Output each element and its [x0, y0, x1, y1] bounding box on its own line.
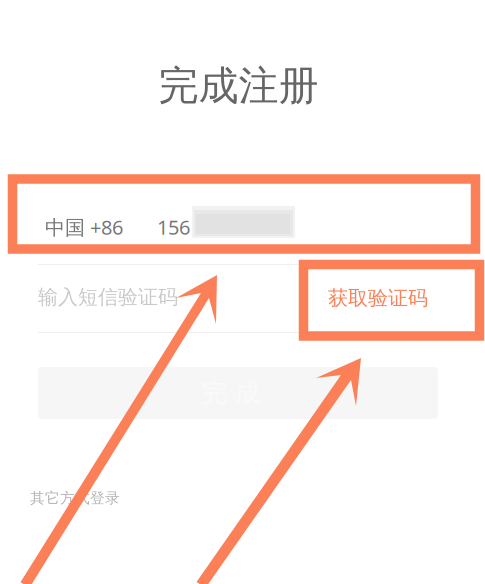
button[interactable]: 获取验证码 — [308, 273, 448, 323]
staticText: 其它方式登录 — [30, 489, 120, 507]
staticText: 输入短信验证码 — [38, 285, 178, 309]
staticText: 156 — [157, 214, 190, 240]
staticText: 完成注册 — [158, 61, 318, 110]
staticText: 中国 +86 — [45, 214, 123, 240]
staticText: 获取验证码 — [328, 286, 428, 310]
button[interactable]: 完 成 — [38, 367, 438, 419]
button[interactable]: 其它方式登录 — [30, 486, 160, 510]
